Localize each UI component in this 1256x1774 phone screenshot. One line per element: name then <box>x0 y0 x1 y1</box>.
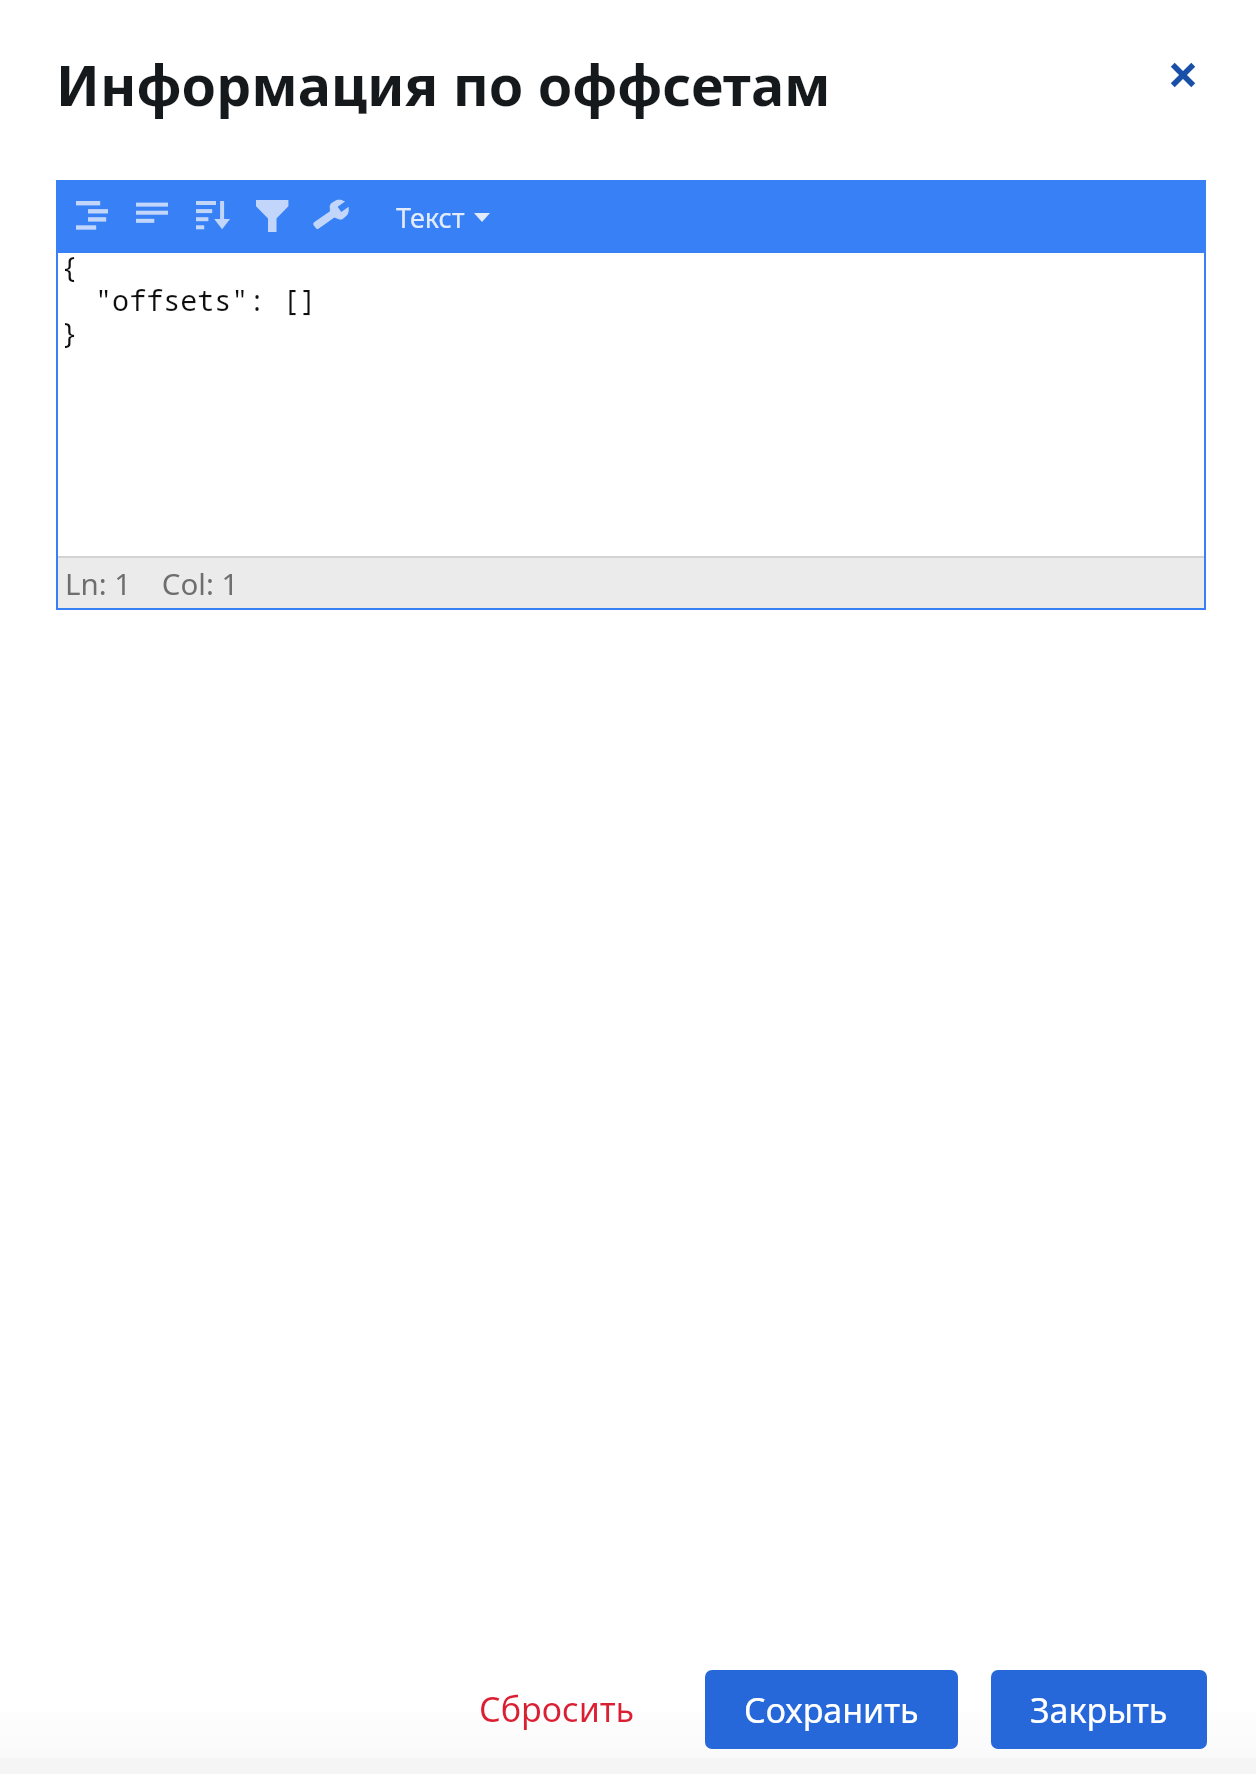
staticText: { "offsets": [] } <box>61 248 317 352</box>
staticText: Текст <box>396 199 465 236</box>
button[interactable]: Инструменты <box>308 189 354 235</box>
button[interactable]: Форматировать отступы <box>68 189 114 235</box>
staticText: Ln: 1 Col: 1 <box>65 563 239 603</box>
button[interactable]: Фильтр <box>248 189 294 235</box>
button[interactable]: Сбросить <box>461 1676 653 1742</box>
staticText: Информация по оффсетам <box>56 47 831 123</box>
button[interactable]: Сортировать <box>188 189 234 235</box>
staticText: Сохранить <box>744 1687 919 1733</box>
staticText: Сбросить <box>479 1686 635 1732</box>
button[interactable]: Сохранить <box>705 1670 958 1749</box>
staticText: Закрыть <box>1030 1687 1168 1733</box>
button[interactable]: Закрыть <box>991 1670 1207 1749</box>
button[interactable]: Текст <box>390 182 496 253</box>
button[interactable]: Закрыть диалог <box>1150 42 1216 108</box>
button[interactable]: Выровнять <box>128 189 174 235</box>
